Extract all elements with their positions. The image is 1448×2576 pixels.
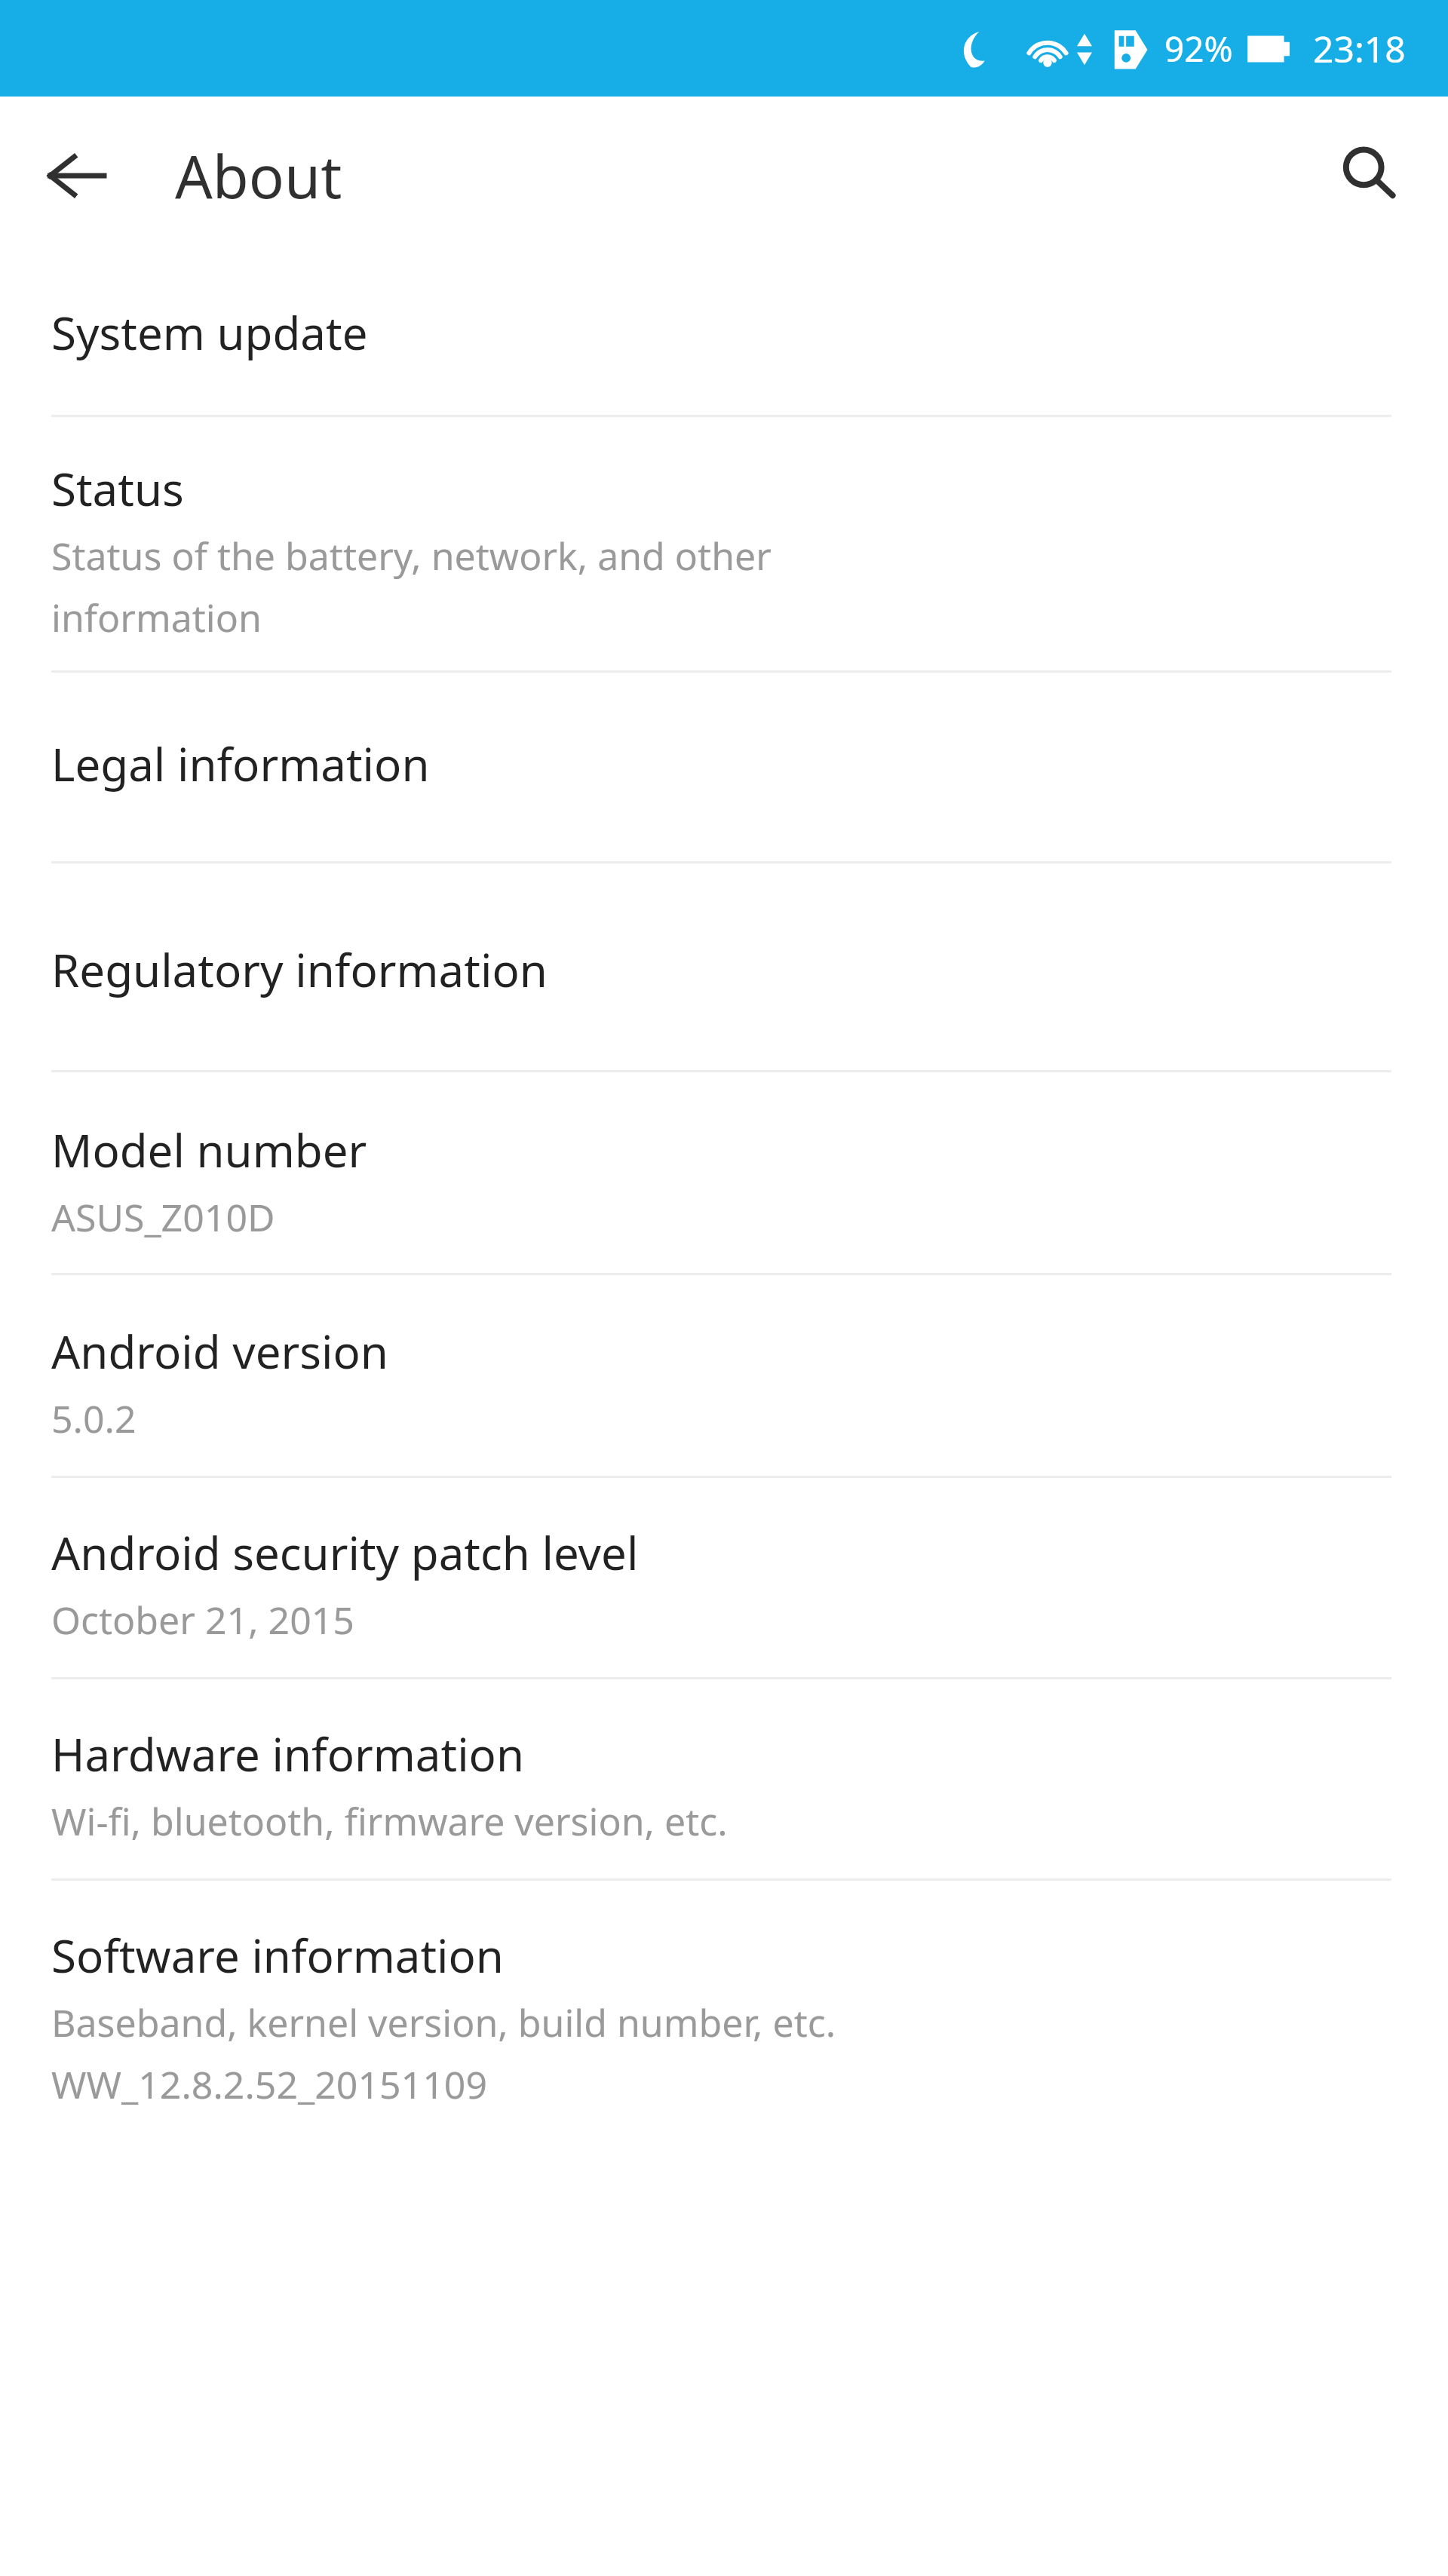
- staticText: Android security patch level: [51, 1522, 639, 1584]
- staticText: ASUS_Z010D: [51, 1191, 275, 1243]
- staticText: Regulatory information: [51, 939, 548, 1001]
- staticText: Status: [51, 458, 184, 520]
- staticText: 92%: [1164, 25, 1233, 72]
- staticText: Android version: [51, 1320, 388, 1382]
- button[interactable]: Back: [30, 130, 121, 221]
- button[interactable]: Model number: [0, 1072, 1448, 1273]
- staticText: Hardware information: [51, 1723, 524, 1785]
- staticText: System update: [51, 302, 368, 363]
- button[interactable]: Regulatory information: [0, 863, 1448, 1070]
- staticText: Software information: [51, 1924, 504, 1986]
- staticText: Legal information: [51, 733, 430, 795]
- staticText: information: [51, 592, 262, 643]
- staticText: October 21, 2015: [51, 1594, 354, 1645]
- button[interactable]: System update: [0, 255, 1448, 415]
- button[interactable]: Android security patch level: [0, 1478, 1448, 1677]
- staticText: Status of the battery, network, and othe…: [51, 530, 772, 581]
- button[interactable]: Legal information: [0, 673, 1448, 861]
- staticText: Wi-fi, bluetooth, firmware version, etc.: [51, 1796, 728, 1847]
- button[interactable]: Software information: [0, 1881, 1448, 2133]
- staticText: Baseband, kernel version, build number, …: [51, 1997, 836, 2048]
- staticText: 5.0.2: [51, 1393, 137, 1444]
- button[interactable]: Android version: [0, 1275, 1448, 1476]
- staticText: Model number: [51, 1119, 367, 1181]
- staticText: 23:18: [1313, 24, 1406, 73]
- staticText: About: [175, 136, 342, 216]
- button[interactable]: Hardware information: [0, 1679, 1448, 1878]
- button[interactable]: Search: [1324, 130, 1415, 221]
- button[interactable]: Status: [0, 417, 1448, 670]
- staticText: WW_12.8.2.52_20151109: [51, 2059, 487, 2110]
